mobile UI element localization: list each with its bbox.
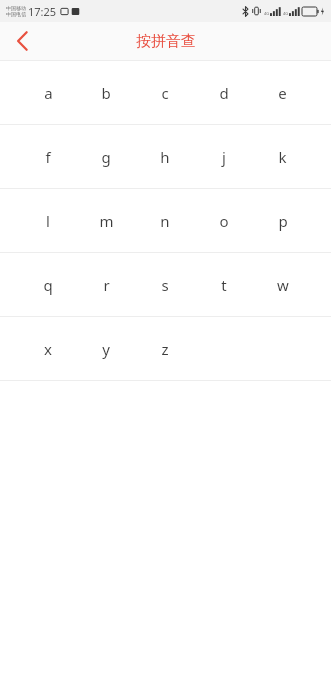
- staticText: 中国电信: [6, 11, 26, 17]
- button[interactable]: e: [253, 61, 312, 124]
- staticText: 按拼音查: [136, 32, 196, 51]
- staticText: x: [44, 339, 52, 359]
- button[interactable]: Back: [0, 22, 44, 60]
- button[interactable]: f: [19, 125, 77, 188]
- staticText: k: [278, 147, 287, 167]
- staticText: g: [101, 147, 111, 167]
- staticText: a: [44, 83, 53, 103]
- staticText: 4G: [283, 11, 289, 16]
- button[interactable]: d: [194, 61, 253, 124]
- button[interactable]: p: [253, 189, 312, 252]
- staticText: p: [278, 211, 288, 231]
- button[interactable]: w: [253, 253, 312, 316]
- staticText: 4G: [264, 11, 270, 16]
- button[interactable]: r: [77, 253, 135, 316]
- button[interactable]: y: [77, 317, 135, 380]
- button[interactable]: s: [135, 253, 194, 316]
- staticText: e: [278, 83, 287, 103]
- staticText: 17:25: [28, 4, 57, 19]
- button[interactable]: c: [135, 61, 194, 124]
- staticText: d: [219, 83, 229, 103]
- button[interactable]: z: [135, 317, 194, 380]
- button[interactable]: k: [253, 125, 312, 188]
- button[interactable]: h: [135, 125, 194, 188]
- button[interactable]: b: [77, 61, 135, 124]
- staticText: f: [45, 147, 51, 167]
- staticText: y: [102, 339, 110, 359]
- button[interactable]: q: [19, 253, 77, 316]
- button[interactable]: o: [194, 189, 253, 252]
- staticText: t: [221, 275, 227, 295]
- staticText: j: [222, 147, 226, 167]
- staticText: n: [160, 211, 170, 231]
- staticText: q: [43, 275, 53, 295]
- button[interactable]: l: [19, 189, 77, 252]
- staticText: h: [160, 147, 170, 167]
- staticText: r: [103, 275, 110, 295]
- staticText: c: [161, 83, 169, 103]
- staticText: z: [161, 339, 169, 359]
- staticText: 中国移动: [6, 5, 26, 11]
- button[interactable]: t: [194, 253, 253, 316]
- button[interactable]: j: [194, 125, 253, 188]
- staticText: b: [101, 83, 111, 103]
- staticText: o: [219, 211, 229, 231]
- staticText: w: [277, 275, 289, 295]
- button[interactable]: g: [77, 125, 135, 188]
- staticText: l: [46, 211, 50, 231]
- staticText: s: [161, 275, 169, 295]
- button[interactable]: x: [19, 317, 77, 380]
- button[interactable]: n: [135, 189, 194, 252]
- button[interactable]: m: [77, 189, 135, 252]
- staticText: m: [99, 211, 114, 231]
- button[interactable]: a: [19, 61, 77, 124]
